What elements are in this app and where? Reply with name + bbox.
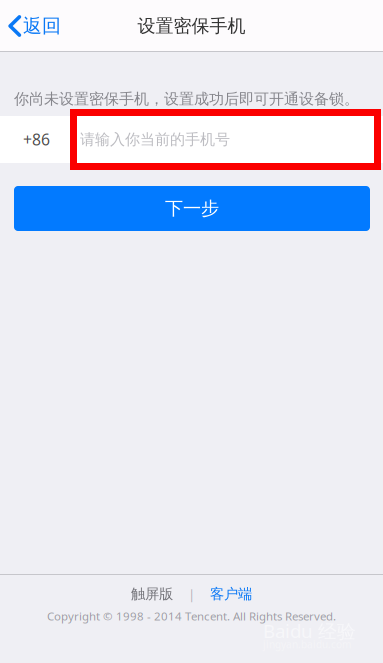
staticText: 下一步: [165, 197, 219, 220]
staticText: Baidu 经验: [263, 618, 356, 643]
button[interactable]: 请输入你当前的手机号: [74, 116, 383, 163]
staticText: 设置密保手机: [137, 15, 245, 37]
staticText: +86: [23, 129, 50, 150]
button[interactable]: 下一步: [14, 186, 370, 231]
staticText: 客户端: [210, 585, 252, 603]
staticText: Copyright © 1998 - 2014 Tencent. All Rig…: [47, 608, 336, 624]
button[interactable]: 返回: [0, 0, 71, 52]
button[interactable]: 客户端: [210, 585, 252, 603]
staticText: 触屏版: [131, 585, 173, 603]
staticText: 你尚未设置密保手机，设置成功后即可开通设备锁。: [14, 89, 359, 108]
button[interactable]: +86: [0, 116, 73, 163]
button[interactable]: 触屏版: [131, 585, 173, 603]
staticText: 请输入你当前的手机号: [80, 130, 230, 149]
staticText: 返回: [23, 14, 61, 38]
staticText: |: [188, 585, 195, 603]
